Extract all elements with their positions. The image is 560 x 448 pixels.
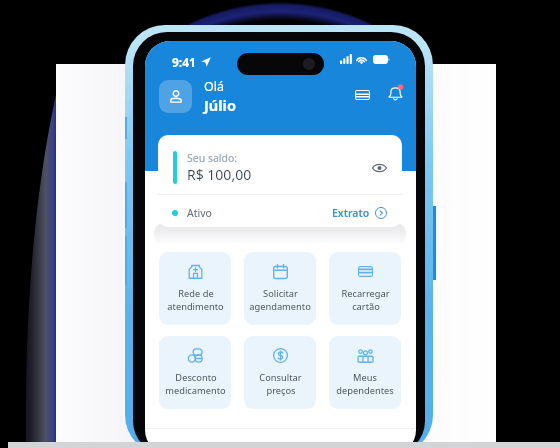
staticText: Júlio: [204, 95, 236, 115]
staticText: preços: [266, 384, 296, 397]
staticText: Olá: [204, 78, 225, 95]
staticText: atendimento: [167, 300, 224, 313]
staticText: medicamento: [165, 384, 226, 397]
button[interactable]: Recarregar: [329, 252, 401, 325]
button[interactable]: Solicitar: [244, 252, 316, 325]
staticText: dependentes: [336, 384, 394, 397]
staticText: Extrato: [332, 206, 370, 220]
button[interactable]: Meus: [329, 336, 401, 409]
button[interactable]: Consultar: [244, 336, 316, 409]
staticText: Seu saldo:: [187, 151, 238, 165]
staticText: Rede de: [178, 287, 214, 300]
staticText: Solicitar: [263, 287, 298, 300]
button[interactable]: Extrato: [332, 206, 387, 220]
staticText: R$ 100,00: [187, 165, 252, 184]
staticText: Ativo: [187, 206, 212, 220]
staticText: 9:41: [172, 54, 196, 70]
staticText: cartão: [352, 300, 380, 313]
staticText: Meus: [353, 371, 377, 384]
staticText: Desconto: [175, 371, 217, 384]
button[interactable]: Seu saldo:: [158, 135, 402, 194]
staticText: Consultar: [259, 371, 302, 384]
button[interactable]: Desconto: [159, 336, 231, 409]
staticText: Recarregar: [341, 287, 390, 300]
button[interactable]: Olá: [159, 78, 236, 115]
button[interactable]: Cartões: [348, 81, 376, 109]
button[interactable]: Rede de: [159, 252, 231, 325]
staticText: agendamento: [249, 300, 311, 313]
button[interactable]: Notificações: [381, 78, 409, 106]
